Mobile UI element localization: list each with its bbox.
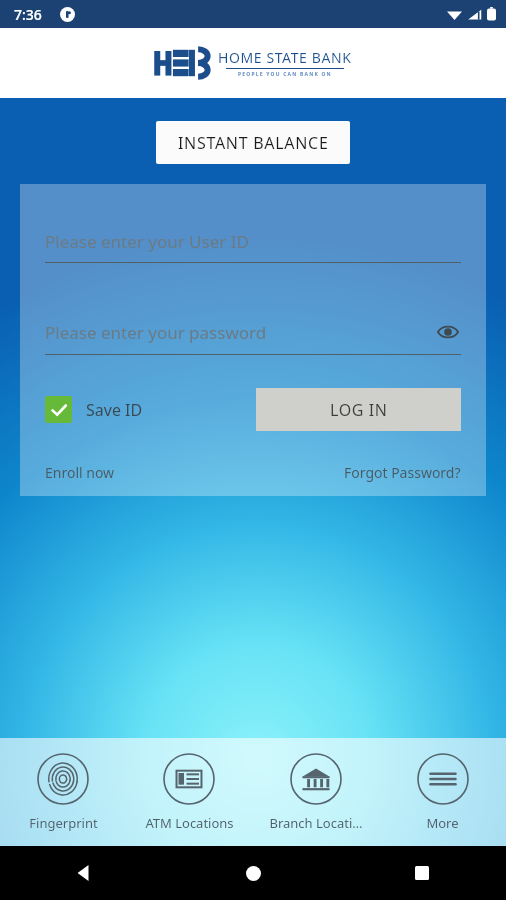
staticText: Please enter your User ID [45, 230, 249, 253]
staticText: More [426, 814, 459, 832]
button[interactable]: Back [67, 856, 101, 890]
staticText: Save ID [86, 399, 143, 421]
staticText: HOME STATE BANK [218, 48, 352, 67]
staticText: PEOPLE YOU CAN BANK ON [238, 71, 332, 78]
staticText: 7:36 [14, 5, 42, 24]
button[interactable]: Branch Locati… [252, 738, 379, 846]
staticText: Branch Locati… [269, 814, 363, 832]
button[interactable]: LOG IN [256, 388, 461, 431]
staticText: Fingerprint [29, 814, 98, 832]
button[interactable]: Recent apps [405, 856, 439, 890]
button[interactable]: Save ID [45, 396, 143, 423]
staticText: Enroll now [45, 463, 115, 482]
button[interactable]: More [379, 738, 506, 846]
staticText: Please enter your password [45, 321, 435, 344]
button[interactable]: Please enter your User ID [45, 230, 461, 263]
staticText: LOG IN [330, 399, 388, 421]
button[interactable]: Fingerprint [0, 738, 126, 846]
staticText: Forgot Password? [344, 463, 461, 482]
button[interactable]: Enroll now [45, 463, 115, 482]
staticText: INSTANT BALANCE [178, 132, 329, 154]
button[interactable]: Show password [435, 319, 461, 345]
staticText: ATM Locations [145, 814, 234, 832]
button[interactable]: INSTANT BALANCE [156, 121, 350, 164]
button[interactable]: Home [236, 856, 270, 890]
button[interactable]: Please enter your password [45, 319, 461, 355]
button[interactable]: ATM Locations [126, 738, 252, 846]
button[interactable]: Forgot Password? [344, 463, 461, 482]
